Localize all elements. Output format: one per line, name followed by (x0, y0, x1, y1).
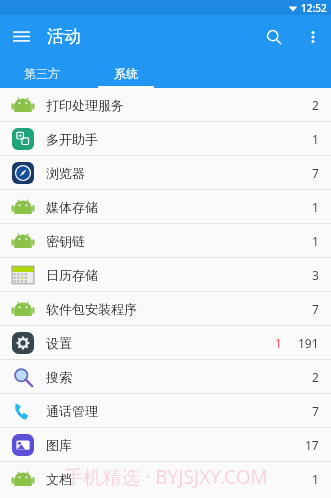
button[interactable]: 通话管理 (0, 394, 331, 427)
staticText: 1 (312, 131, 319, 147)
button[interactable]: Navigation menu (0, 15, 43, 58)
staticText: 2 (312, 369, 319, 385)
button[interactable]: 系统 (84, 58, 168, 88)
button[interactable]: Search (252, 15, 295, 58)
staticText: 12:52 (301, 1, 327, 15)
staticText: 2 (312, 97, 319, 113)
staticText: 密钥链 (46, 233, 85, 249)
staticText: 7 (312, 165, 319, 181)
button[interactable]: 浏览器 (0, 156, 331, 189)
button[interactable]: 图库 (0, 428, 331, 461)
staticText: 3 (312, 267, 319, 283)
staticText: 7 (312, 403, 319, 419)
button[interactable]: More options (295, 19, 331, 55)
staticText: 1 (312, 471, 319, 487)
staticText: 1 (312, 233, 319, 249)
staticText: 17 (305, 437, 319, 453)
button[interactable]: 打印处理服务 (0, 88, 331, 121)
button[interactable]: 密钥链 (0, 224, 331, 257)
staticText: 系统 (114, 66, 138, 81)
staticText: 图库 (46, 437, 72, 453)
button[interactable]: 日历存储 (0, 258, 331, 291)
button[interactable]: 软件包安装程序 (0, 292, 331, 325)
staticText: 第三方 (24, 66, 60, 81)
staticText: 软件包安装程序 (46, 301, 137, 317)
staticText: 搜索 (46, 369, 72, 385)
button[interactable]: 多开助手 (0, 122, 331, 155)
staticText: 手机精选 · BYJSJXY.COM (64, 464, 268, 490)
staticText: 通话管理 (46, 403, 98, 419)
staticText: 191 (298, 335, 319, 351)
staticText: 多开助手 (46, 131, 98, 147)
staticText: 打印处理服务 (46, 97, 124, 113)
button[interactable]: 设置 (0, 326, 331, 359)
staticText: 文档 (46, 471, 72, 487)
staticText: 日历存储 (46, 267, 98, 283)
staticText: 1 (312, 199, 319, 215)
staticText: 浏览器 (46, 165, 85, 181)
staticText: 7 (312, 301, 319, 317)
staticText: 活动 (47, 26, 81, 47)
button[interactable]: 文档 (0, 462, 331, 495)
button[interactable]: 搜索 (0, 360, 331, 393)
button[interactable]: 媒体存储 (0, 190, 331, 223)
staticText: 1 (275, 335, 282, 351)
button[interactable]: 第三方 (0, 58, 84, 88)
staticText: 设置 (46, 335, 72, 351)
staticText: 媒体存储 (46, 199, 98, 215)
